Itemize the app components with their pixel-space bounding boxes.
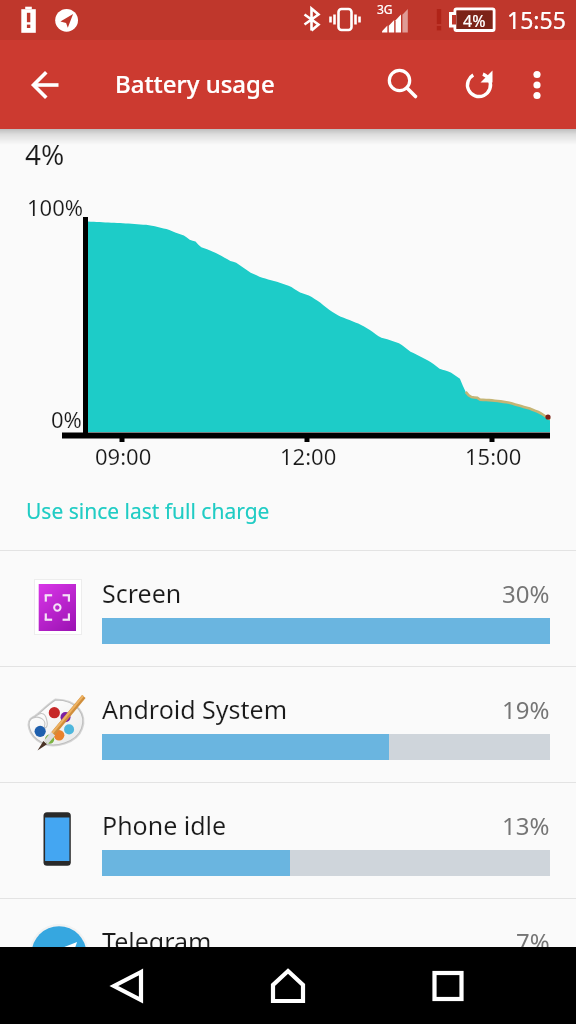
button[interactable]: Back <box>18 40 74 129</box>
staticText: Telegram <box>102 924 212 958</box>
button[interactable]: Search <box>375 40 431 129</box>
staticText: 100% <box>27 192 84 222</box>
button[interactable]: Home <box>240 947 336 1024</box>
staticText: 19% <box>502 693 550 726</box>
staticText: 13% <box>502 809 550 842</box>
staticText: Android System <box>102 692 288 726</box>
button[interactable]: Back <box>80 947 176 1024</box>
button[interactable]: Telegram <box>0 899 576 1014</box>
staticText: 3G <box>377 1 393 17</box>
staticText: 7% <box>516 925 550 958</box>
button[interactable]: More options <box>514 40 560 129</box>
staticText: 15:00 <box>465 441 522 471</box>
button[interactable]: Phone idle <box>0 783 576 898</box>
staticText: 15:55 <box>507 4 566 35</box>
button[interactable]: Recent apps <box>400 947 496 1024</box>
staticText: 4% <box>463 10 486 32</box>
staticText: Use since last full charge <box>26 497 270 526</box>
staticText: 0% <box>51 404 82 434</box>
staticText: 09:00 <box>95 441 152 471</box>
button[interactable]: Screen <box>0 551 576 666</box>
button[interactable]: Use since last full charge <box>0 489 576 550</box>
button[interactable]: Refresh <box>453 40 509 129</box>
staticText: Screen <box>102 576 182 610</box>
staticText: Battery usage <box>115 67 275 100</box>
staticText: 12:00 <box>280 441 337 471</box>
button[interactable]: Android System <box>0 667 576 782</box>
staticText: Phone idle <box>102 808 227 842</box>
staticText: 4% <box>25 135 65 173</box>
staticText: 30% <box>502 577 550 610</box>
